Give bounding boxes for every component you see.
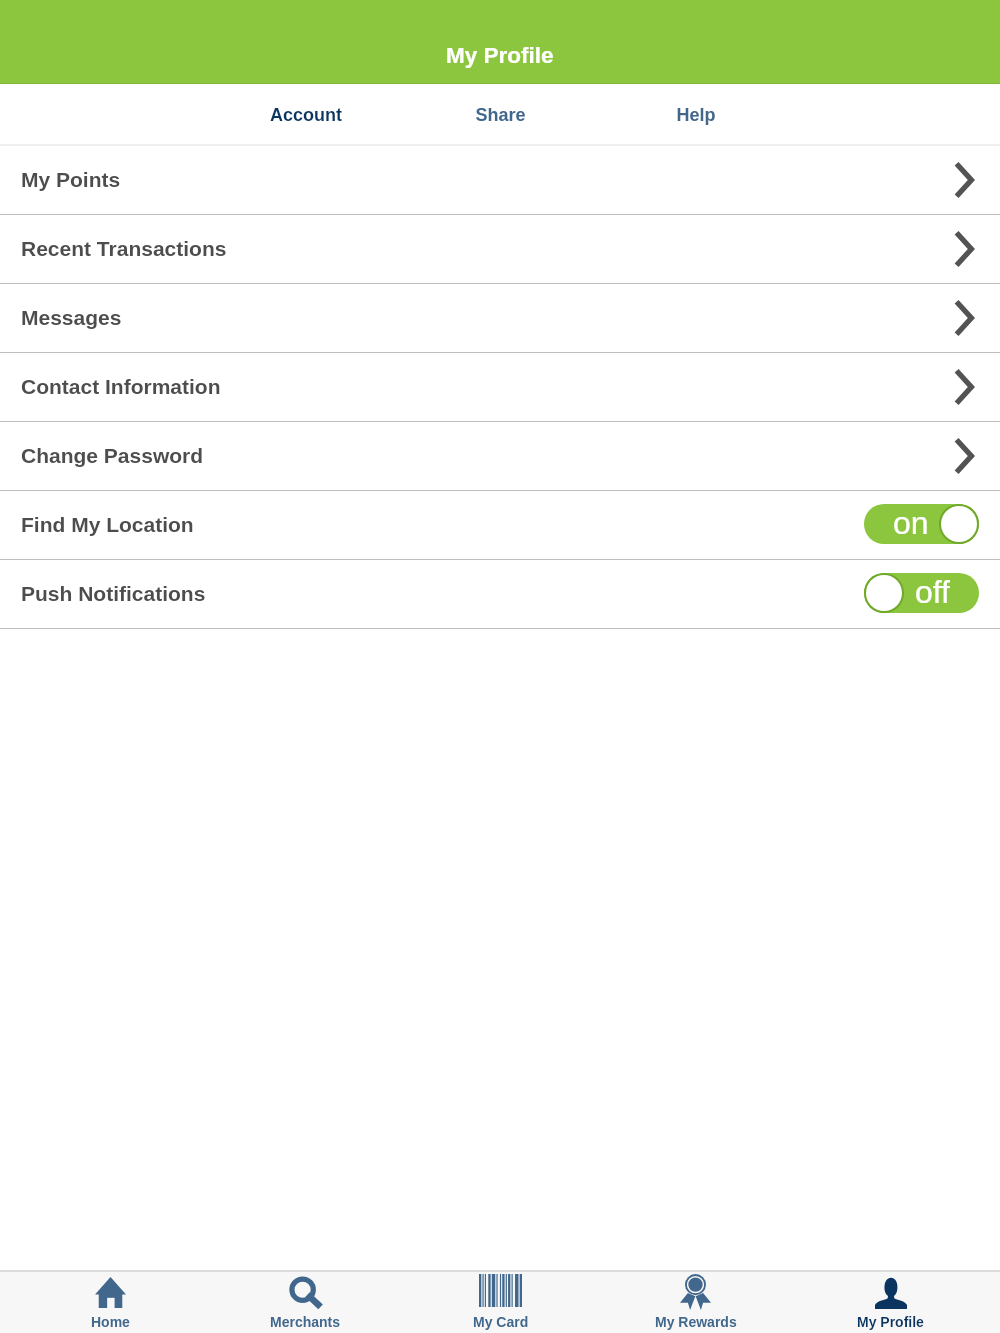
staticText: Account (270, 105, 342, 125)
button[interactable]: Share (403, 84, 598, 146)
button[interactable]: Contact Information (0, 353, 1000, 421)
staticText: Contact Information (21, 375, 221, 398)
button[interactable]: Account (208, 84, 403, 146)
other: Open (932, 215, 1000, 283)
staticText: off (915, 574, 950, 610)
staticText: Merchants (270, 1314, 341, 1330)
button[interactable]: My Points (0, 146, 1000, 214)
button[interactable]: Home (13, 1272, 208, 1333)
button[interactable]: My Rewards (598, 1272, 793, 1333)
button[interactable]: On (864, 504, 979, 544)
staticText: My Profile (446, 43, 554, 68)
other: Open (932, 353, 1000, 421)
staticText: Home (91, 1314, 130, 1330)
button[interactable]: My Card (403, 1272, 598, 1333)
staticText: Change Password (21, 444, 204, 467)
staticText: Recent Transactions (21, 237, 227, 260)
other: Open (932, 422, 1000, 490)
button[interactable]: Push Notifications (0, 560, 1000, 628)
staticText: My Card (473, 1314, 529, 1330)
staticText: Messages (21, 306, 122, 329)
staticText: My Profile (857, 1314, 924, 1330)
button[interactable]: Merchants (208, 1272, 403, 1333)
button[interactable]: Recent Transactions (0, 215, 1000, 283)
button[interactable]: Find My Location (0, 491, 1000, 559)
other: Open (932, 284, 1000, 352)
staticText: Share (475, 105, 526, 125)
staticText: Help (676, 105, 716, 125)
staticText: on (893, 505, 929, 541)
staticText: My Points (21, 168, 121, 191)
button[interactable]: Help (598, 84, 793, 146)
button[interactable]: My Profile (793, 1272, 988, 1333)
button[interactable]: Off (864, 573, 979, 613)
staticText: Push Notifications (21, 582, 206, 605)
other: Open (932, 146, 1000, 214)
staticText: My Rewards (655, 1314, 737, 1330)
button[interactable]: Messages (0, 284, 1000, 352)
staticText: Find My Location (21, 513, 194, 536)
button[interactable]: Change Password (0, 422, 1000, 490)
